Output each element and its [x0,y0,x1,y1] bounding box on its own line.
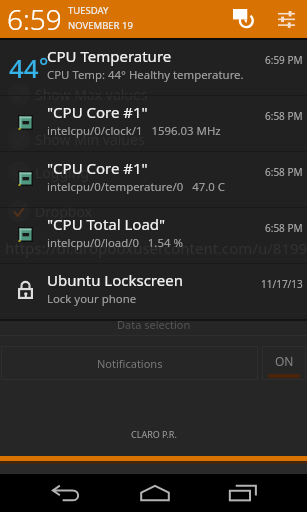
button[interactable]: Quick settings [266,0,306,38]
staticText: 6:58 PM [265,165,303,179]
staticText: 6:58 PM [265,109,303,123]
staticText: 11/17/13 [261,277,303,291]
staticText: 6:59 PM [265,53,303,67]
button[interactable]: "CPU Total Load" [0,208,307,263]
button[interactable]: Back [22,474,110,512]
button[interactable]: Notifications [1,346,258,380]
staticText: Data selection [117,317,191,332]
staticText: ON [275,353,294,369]
staticText: CLARO P.R. [131,428,177,440]
staticText: intelcpu/0/load/0 1.54 % [47,235,183,251]
staticText: 6:58 PM [265,221,303,235]
staticText: Notifications [97,356,163,371]
button[interactable]: Show Min values [0,128,307,150]
staticText: CPU Temp: 44° Healthy temperature. [47,67,244,83]
button[interactable]: ON [262,346,306,380]
button[interactable]: Logging [0,161,307,183]
button[interactable]: Ubuntu Lockscreen [0,264,307,319]
staticText: ° [39,50,49,80]
button[interactable]: "CPU Core #1" [0,152,307,207]
staticText: "CPU Core #1" [47,158,148,178]
staticText: Dropbox [35,202,93,221]
staticText: intelcpu/0/clock/1 1596.03 MHz [47,123,221,139]
button[interactable]: 44 [0,40,307,95]
staticText: "CPU Core #1" [47,102,148,122]
staticText: Show Min values [35,130,145,149]
staticText: CPU Temperature [47,46,172,66]
button[interactable]: Recent apps [199,474,287,512]
staticText: https://dl.dropboxusercontent.com/u/8199… [5,238,307,258]
staticText: Ubuntu Lockscreen [47,270,183,290]
button[interactable]: "CPU Core #1" [0,96,307,151]
staticText: TUESDAY [68,4,109,17]
staticText: intelcpu/0/temperature/0 47.0 C [47,179,225,195]
staticText: NOVEMBER 19 [68,19,133,32]
staticText: "CPU Total Load" [47,214,166,234]
button[interactable]: Dropbox [0,200,307,222]
staticText: 44 [9,50,39,85]
button[interactable]: Home [110,474,199,512]
staticText: Lock your phone [47,291,137,307]
button[interactable]: Clear all notifications [223,0,263,38]
staticText: Logging [35,163,89,182]
button[interactable]: Data selection [0,314,307,335]
staticText: 6:59 [7,0,62,38]
staticText: Show Max values [35,85,148,104]
